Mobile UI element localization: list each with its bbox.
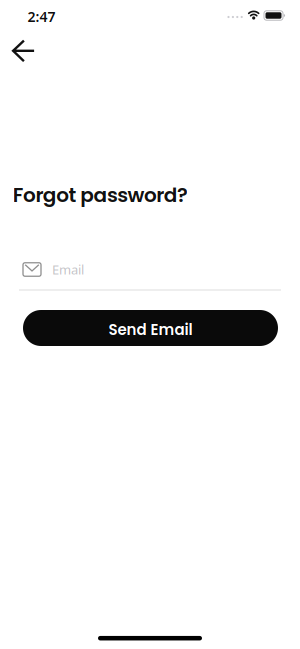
button[interactable]: Email [19, 262, 281, 290]
button[interactable] [11, 39, 35, 63]
staticText: 2:47 [27, 7, 55, 26]
staticText: Email [52, 261, 84, 278]
button[interactable]: Send Email [23, 310, 278, 346]
staticText: Forgot password? [13, 181, 188, 209]
staticText: Send Email [108, 319, 192, 340]
